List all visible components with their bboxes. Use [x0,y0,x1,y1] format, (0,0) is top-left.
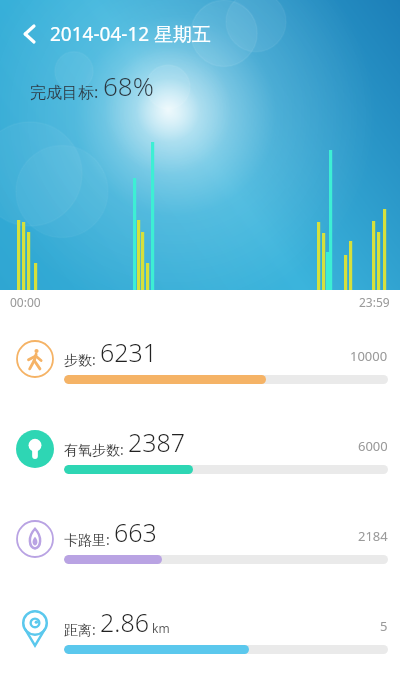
staticText: 663 [114,515,157,549]
staticText: 卡路里: [64,530,114,549]
staticText: 6231 [100,335,158,369]
button[interactable]: 有氧步数: [0,404,400,494]
staticText: 6000 [358,437,388,455]
staticText: 2387 [128,425,186,459]
staticText: 68% [103,68,154,103]
staticText: 步数: [64,350,100,369]
staticText: 完成目标: [30,81,103,103]
staticText: 23:59 [359,294,390,310]
staticText: 2184 [358,527,388,545]
staticText: 10000 [350,347,388,365]
staticText: 有氧步数: [64,440,128,459]
staticText: km [152,620,170,636]
staticText: 00:00 [10,294,41,310]
button[interactable]: 卡路里: [0,494,400,584]
staticText: 2014-04-12 星期五 [50,21,212,47]
staticText: 距离: [64,620,100,639]
button[interactable]: Back [10,14,50,54]
staticText: 2.86 [100,605,149,639]
staticText: 5 [380,617,388,635]
button[interactable]: 步数: [0,314,400,404]
button[interactable]: 距离: [0,584,400,674]
